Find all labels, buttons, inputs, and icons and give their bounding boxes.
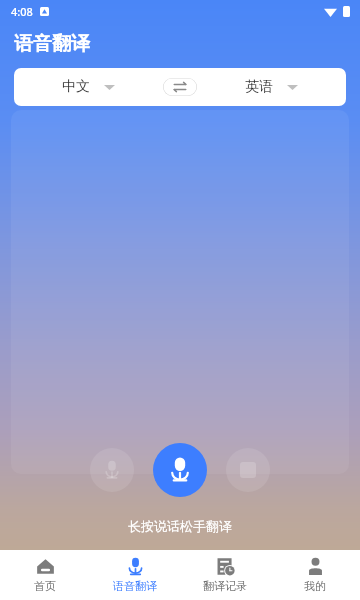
staticText: 中文 [62, 78, 90, 96]
staticText: 翻译记录 [203, 579, 247, 593]
staticText: 英语 [245, 78, 273, 96]
button[interactable]: 首页 [0, 550, 90, 600]
staticText: 我的 [304, 579, 326, 593]
button[interactable]: Stop [226, 448, 270, 492]
button[interactable]: Swap languages [163, 78, 197, 96]
button[interactable]: 中文 [14, 68, 163, 106]
button[interactable]: 语音翻译 [90, 550, 180, 600]
staticText: 长按说话松手翻译 [128, 518, 232, 534]
button[interactable]: 英语 [197, 68, 346, 106]
button[interactable]: Voice input [90, 448, 134, 492]
staticText: 语音翻译 [14, 32, 90, 56]
button[interactable]: 我的 [270, 550, 360, 600]
button[interactable]: Hold to speak [153, 443, 207, 497]
staticText: 语音翻译 [113, 579, 157, 593]
staticText: 首页 [34, 579, 56, 593]
button[interactable]: 翻译记录 [180, 550, 270, 600]
staticText: 4:08 [11, 4, 33, 19]
